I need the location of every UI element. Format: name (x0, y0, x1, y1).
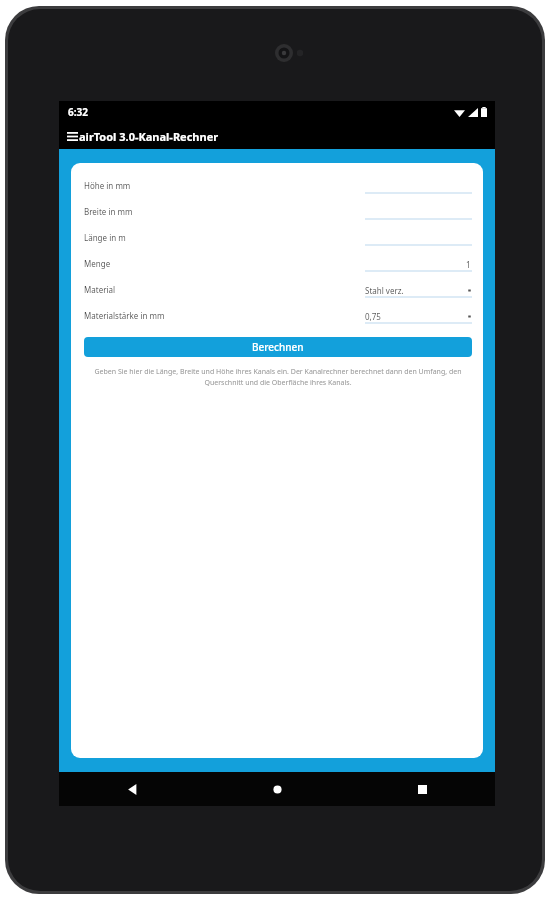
staticText: Geben Sie hier die Länge, Breite und Höh… (88, 367, 468, 387)
staticText: Material (84, 284, 116, 295)
staticText: Länge in m (84, 232, 126, 243)
staticText: Berechnen (252, 340, 304, 354)
button[interactable]: Materialstärke in mm (84, 302, 472, 328)
button[interactable]: Breite in mm (84, 198, 472, 224)
button[interactable]: Menge (84, 250, 472, 276)
button[interactable]: Berechnen (84, 337, 472, 357)
button[interactable]: Home (205, 772, 350, 806)
other: Open navigation menu (67, 132, 78, 141)
staticText: Menge (84, 258, 111, 269)
staticText: Materialstärke in mm (84, 310, 165, 321)
button[interactable]: Material (84, 276, 472, 302)
staticText: Stahl verz. (365, 285, 404, 296)
button[interactable]: Open navigation menu (59, 123, 495, 149)
staticText: airTool 3.0-Kanal-Rechner (79, 129, 219, 144)
staticText: 6:32 (68, 105, 88, 119)
staticText: Breite in mm (84, 206, 133, 217)
button[interactable]: Recent apps (350, 772, 495, 806)
button[interactable]: Länge in m (84, 224, 472, 250)
button[interactable]: Höhe in mm (84, 172, 472, 198)
button[interactable]: Back (59, 772, 205, 806)
staticText: 0,75 (365, 311, 381, 322)
staticText: Höhe in mm (84, 180, 131, 191)
staticText: 1 (466, 259, 471, 270)
